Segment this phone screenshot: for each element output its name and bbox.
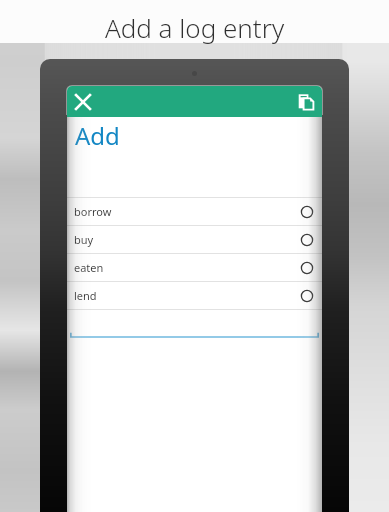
- staticText: lend: [74, 288, 97, 303]
- staticText: Add a log entry: [0, 10, 389, 45]
- button[interactable]: eaten: [67, 254, 322, 281]
- button[interactable]: buy: [67, 226, 322, 253]
- button[interactable]: borrow: [67, 198, 322, 225]
- staticText: Add: [75, 119, 120, 152]
- staticText: eaten: [74, 260, 104, 275]
- button[interactable]: Close: [69, 88, 97, 116]
- staticText: buy: [74, 232, 94, 247]
- staticText: borrow: [74, 204, 112, 219]
- button[interactable]: lend: [67, 282, 322, 309]
- button[interactable]: Paste: [293, 88, 321, 116]
